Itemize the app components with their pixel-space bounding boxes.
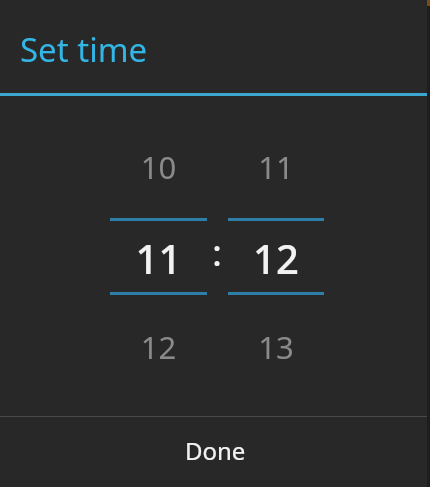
button[interactable]: Minutes [228, 130, 324, 370]
staticText: 10 [110, 146, 207, 188]
button[interactable]: Hours [110, 130, 207, 370]
staticText: 11 [110, 231, 207, 285]
staticText: Done [185, 434, 246, 467]
staticText: 12 [110, 326, 207, 368]
button[interactable]: Done [0, 417, 430, 487]
staticText: Set time [20, 27, 148, 72]
staticText: 11 [228, 146, 324, 188]
staticText: 12 [228, 231, 324, 285]
staticText: 13 [228, 326, 324, 368]
